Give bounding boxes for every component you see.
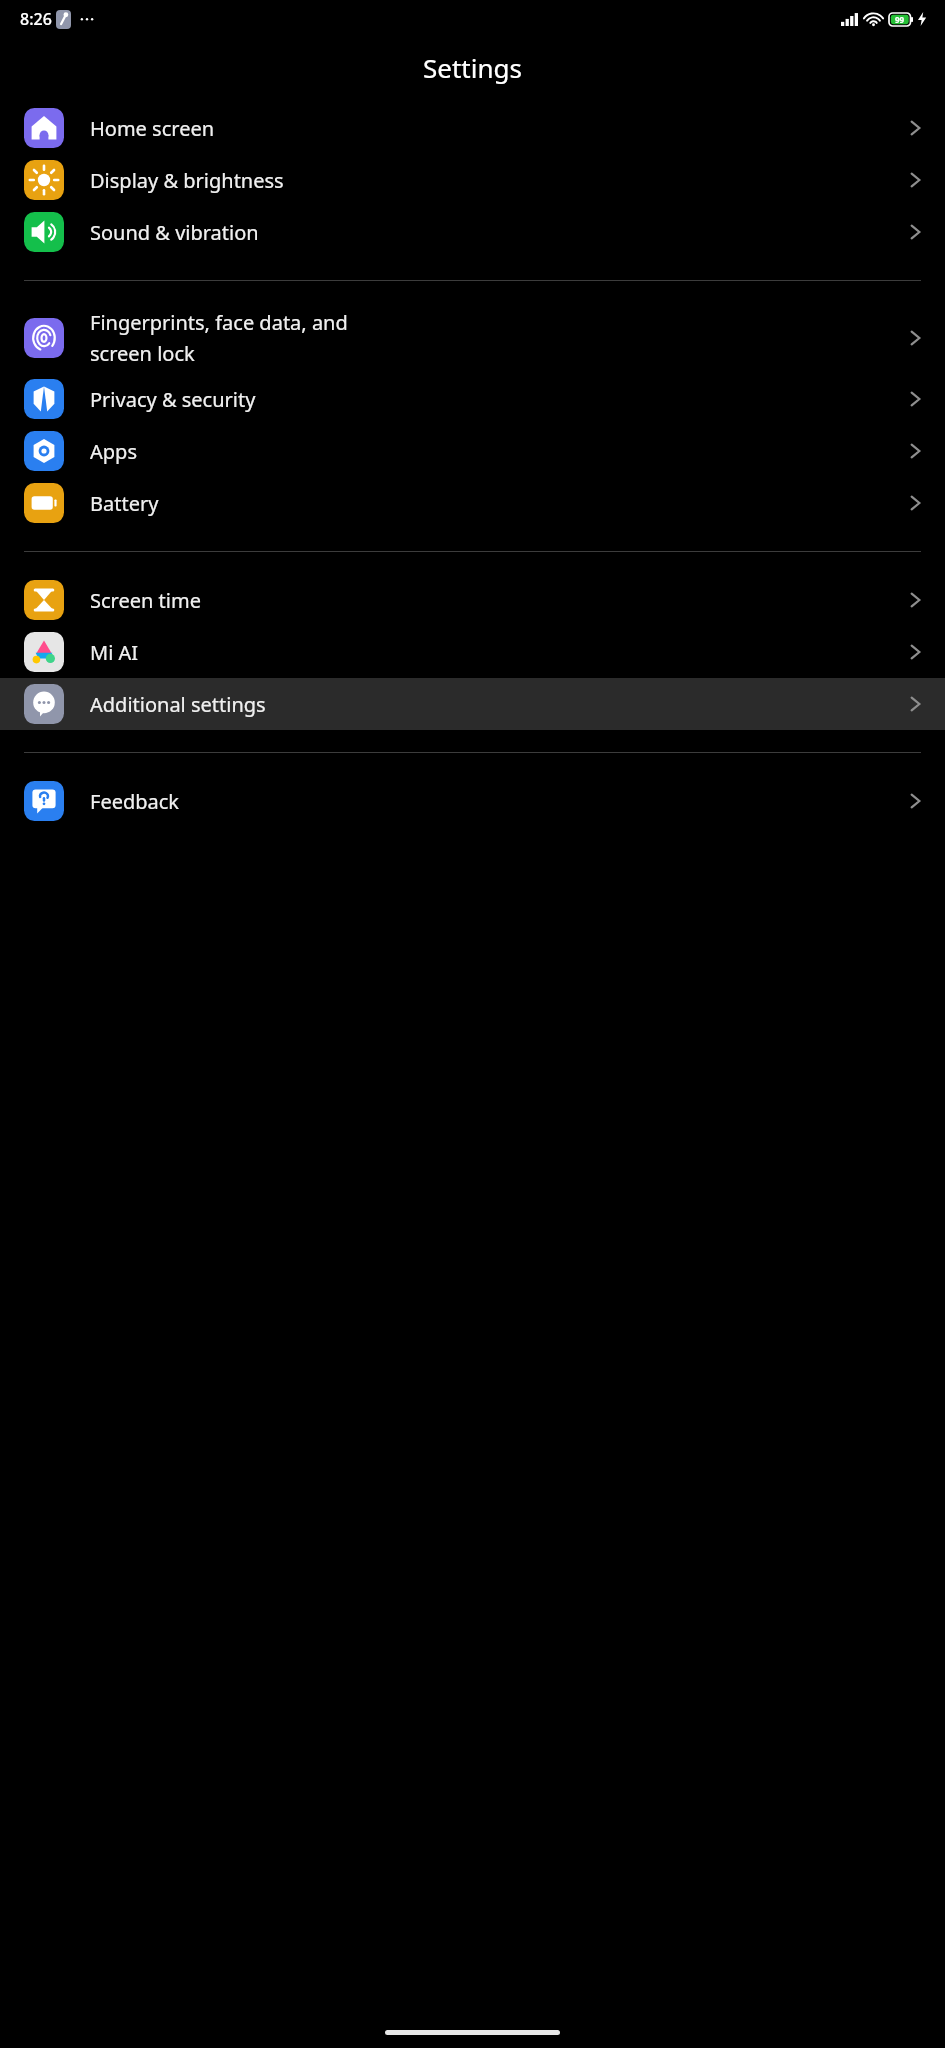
- button[interactable]: Screen time: [0, 574, 945, 626]
- button[interactable]: Mi AI: [0, 626, 945, 678]
- staticText: Feedback: [90, 788, 910, 815]
- other: Open: [910, 389, 921, 409]
- other: Open: [910, 118, 921, 138]
- staticText: Settings: [423, 50, 522, 85]
- other: Open: [910, 328, 921, 348]
- other: Open: [910, 441, 921, 461]
- staticText: screen lock: [90, 340, 195, 367]
- staticText: Display & brightness: [90, 167, 910, 194]
- staticText: Home screen: [90, 115, 910, 142]
- other: Open: [910, 222, 921, 242]
- staticText: 8:26: [20, 8, 52, 30]
- staticText: Privacy & security: [90, 386, 910, 413]
- button[interactable]: Fingerprints, face data, and: [0, 303, 945, 373]
- button[interactable]: Feedback: [0, 775, 945, 827]
- other: Open: [910, 694, 921, 714]
- staticText: Apps: [90, 438, 910, 465]
- staticText: Mi AI: [90, 639, 910, 666]
- other: Open: [910, 642, 921, 662]
- staticText: Fingerprints, face data, and: [90, 309, 348, 336]
- other: Open: [910, 493, 921, 513]
- button[interactable]: Home screen: [0, 102, 945, 154]
- button[interactable]: Sound & vibration: [0, 206, 945, 258]
- staticText: Battery: [90, 490, 910, 517]
- other: Open: [910, 791, 921, 811]
- staticText: 99: [895, 14, 905, 25]
- button[interactable]: Privacy & security: [0, 373, 945, 425]
- button[interactable]: Additional settings: [0, 678, 945, 730]
- button[interactable]: Display & brightness: [0, 154, 945, 206]
- staticText: Sound & vibration: [90, 219, 910, 246]
- button[interactable]: Apps: [0, 425, 945, 477]
- staticText: Screen time: [90, 587, 910, 614]
- other: Open: [910, 170, 921, 190]
- other: Open: [910, 590, 921, 610]
- staticText: Additional settings: [90, 691, 910, 718]
- button[interactable]: Battery: [0, 477, 945, 529]
